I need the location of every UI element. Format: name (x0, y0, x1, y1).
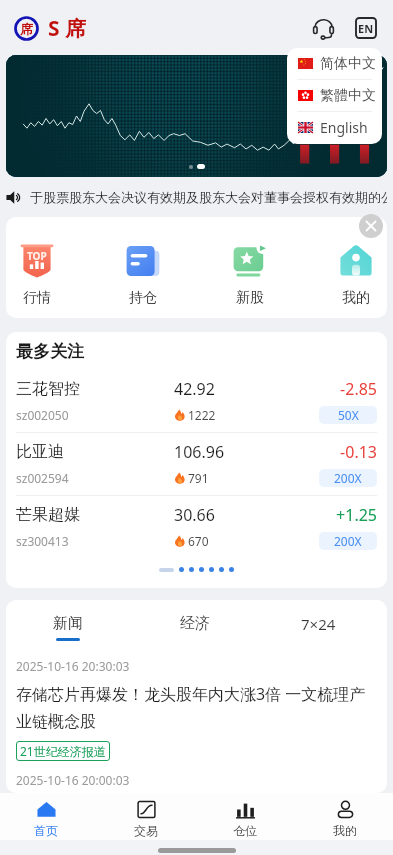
staticText: -0.13 (340, 441, 377, 463)
button[interactable]: Market chart banner (6, 55, 387, 177)
button[interactable]: 经济 (164, 614, 226, 638)
staticText: sz002594 (16, 470, 174, 486)
button[interactable]: Customer support (307, 12, 339, 44)
button[interactable]: Language (350, 12, 382, 44)
button[interactable]: 比亚迪 (6, 433, 387, 495)
staticText: 最多关注 (16, 341, 84, 362)
staticText: 2025-10-16 20:30:03 (16, 658, 130, 674)
staticText: 芒果超媒 (16, 505, 174, 525)
staticText: 21世纪经济报道 (20, 743, 106, 759)
staticText: 30.66 (174, 504, 336, 526)
staticText: 670 (188, 533, 209, 549)
staticText: 仓位 (233, 823, 257, 838)
staticText: 200X (334, 470, 362, 486)
staticText: 存储芯片再爆发！龙头股年内大涨3倍 一文梳理产业链概念股 (16, 683, 377, 732)
staticText: 新闻 (53, 614, 83, 633)
staticText: 新股 (236, 289, 264, 307)
button[interactable]: English (287, 112, 382, 143)
button[interactable]: 三花智控 (6, 370, 387, 432)
staticText: 42.92 (174, 378, 340, 400)
staticText: 席 (20, 21, 33, 37)
staticText: 持仓 (129, 289, 157, 307)
button[interactable]: 首页 (6, 793, 86, 840)
staticText: 7×24 (301, 614, 336, 634)
button[interactable]: 仓位 (205, 793, 285, 840)
button[interactable]: Close (359, 214, 383, 238)
staticText: 繁體中文 (320, 87, 376, 105)
staticText: 经济 (180, 614, 210, 633)
button[interactable]: 新股 (219, 217, 281, 318)
button[interactable]: 我的 (325, 217, 387, 318)
staticText: 我的 (342, 289, 370, 307)
staticText: 行情 (23, 289, 51, 307)
staticText: 2025-10-16 20:00:03 (16, 772, 130, 788)
staticText: TOP (27, 249, 47, 263)
staticText: 106.96 (174, 441, 340, 463)
staticText: 交易 (134, 823, 158, 838)
staticText: -2.85 (340, 378, 377, 400)
button[interactable]: 于股票股东大会决议有效期及股东大会对董事会授权有效期的公告 (6, 184, 387, 210)
staticText: 比亚迪 (16, 442, 174, 462)
staticText: sz300413 (16, 533, 174, 549)
button[interactable]: 芒果超媒 (6, 496, 387, 558)
button[interactable]: 我的 (305, 793, 385, 840)
staticText: English (320, 118, 368, 137)
button[interactable]: 繁體中文 (287, 80, 382, 111)
staticText: EN (358, 21, 374, 36)
staticText: 于股票股东大会决议有效期及股东大会对董事会授权有效期的公告 (30, 189, 387, 205)
staticText: 简体中文 (320, 55, 376, 73)
staticText: 791 (188, 470, 209, 486)
button[interactable]: 持仓 (112, 217, 174, 318)
button[interactable]: TOP (6, 217, 68, 318)
staticText: 200X (334, 533, 362, 549)
button[interactable]: 简体中文 (287, 48, 382, 79)
staticText: 首页 (34, 823, 58, 838)
staticText: 50X (338, 407, 359, 423)
staticText: sz002050 (16, 407, 174, 423)
staticText: S 席 (48, 14, 87, 43)
staticText: +1.25 (336, 504, 377, 526)
staticText: 三花智控 (16, 379, 174, 399)
button[interactable]: 7×24 (287, 614, 349, 639)
button[interactable]: 新闻 (37, 614, 99, 641)
staticText: 我的 (333, 823, 357, 838)
staticText: 1222 (188, 407, 216, 423)
button[interactable]: 交易 (106, 793, 186, 840)
